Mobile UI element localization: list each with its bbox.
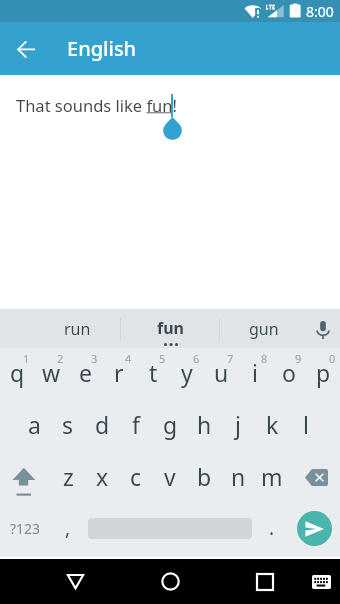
staticText: z <box>63 461 74 492</box>
staticText: ?123 <box>10 519 41 538</box>
staticText: fun <box>157 317 184 339</box>
button[interactable]: k <box>255 400 289 452</box>
button[interactable]: n <box>221 452 255 504</box>
staticText: 3 <box>91 351 98 366</box>
button[interactable]: 8 <box>238 348 272 400</box>
button[interactable]: Recents <box>229 559 300 604</box>
staticText: m <box>261 461 283 492</box>
staticText: q <box>10 357 25 388</box>
staticText: 0 <box>329 351 336 366</box>
staticText: s <box>62 409 74 440</box>
staticText: 7 <box>227 351 234 366</box>
staticText: h <box>197 409 212 440</box>
staticText: e <box>79 357 92 388</box>
button[interactable]: gun <box>217 309 310 348</box>
button[interactable]: 9 <box>272 348 306 400</box>
staticText: x <box>96 461 109 492</box>
button[interactable]: ?123 <box>0 504 51 557</box>
button[interactable]: g <box>153 400 187 452</box>
button[interactable]: 2 <box>34 348 68 400</box>
staticText: d <box>95 409 110 440</box>
button[interactable]: Backspace <box>289 452 340 504</box>
button[interactable]: , <box>51 504 85 557</box>
staticText: English <box>67 35 137 62</box>
staticText: c <box>130 461 142 492</box>
staticText: 5 <box>159 351 166 366</box>
button[interactable]: 3 <box>68 348 102 400</box>
staticText: 8 <box>261 351 268 366</box>
button[interactable]: l <box>289 400 323 452</box>
button[interactable]: Back <box>6 29 46 69</box>
staticText: o <box>282 357 296 388</box>
staticText: y <box>181 357 193 388</box>
staticText: i <box>252 357 258 388</box>
button[interactable]: 6 <box>170 348 204 400</box>
staticText: p <box>316 357 331 388</box>
button[interactable]: s <box>51 400 85 452</box>
button[interactable]: b <box>187 452 221 504</box>
button[interactable]: m <box>255 452 289 504</box>
staticText: 1 <box>23 351 30 366</box>
button[interactable]: Shift <box>0 452 51 504</box>
staticText: 6 <box>193 351 200 366</box>
button[interactable]: . <box>255 504 289 557</box>
button[interactable]: Voice input <box>306 309 340 348</box>
staticText: v <box>164 461 176 492</box>
button[interactable]: Back <box>40 559 110 604</box>
button[interactable]: f <box>119 400 153 452</box>
staticText: n <box>231 461 246 492</box>
button[interactable]: 4 <box>102 348 136 400</box>
staticText: r <box>114 357 124 388</box>
button[interactable]: run <box>31 309 124 348</box>
button[interactable]: Home <box>135 559 206 604</box>
button[interactable]: Send <box>289 504 340 557</box>
button[interactable]: fun <box>124 309 217 348</box>
button[interactable] <box>85 504 255 557</box>
button[interactable]: v <box>153 452 187 504</box>
staticText: gun <box>249 318 279 340</box>
button[interactable]: 0 <box>306 348 340 400</box>
staticText: 2 <box>57 351 64 366</box>
staticText: g <box>163 409 178 440</box>
staticText: a <box>28 409 41 440</box>
staticText: u <box>214 357 229 388</box>
staticText: f <box>132 409 140 440</box>
button[interactable]: z <box>51 452 85 504</box>
button[interactable]: j <box>221 400 255 452</box>
staticText: 9 <box>295 351 302 366</box>
button[interactable]: Switch keyboard <box>300 559 340 604</box>
staticText: b <box>197 461 212 492</box>
button[interactable]: x <box>85 452 119 504</box>
button[interactable]: 5 <box>136 348 170 400</box>
staticText: t <box>149 357 158 388</box>
button[interactable]: 1 <box>0 348 34 400</box>
button[interactable]: a <box>17 400 51 452</box>
button[interactable]: h <box>187 400 221 452</box>
staticText: . <box>269 515 275 541</box>
button[interactable]: c <box>119 452 153 504</box>
button[interactable]: d <box>85 400 119 452</box>
button[interactable]: 7 <box>204 348 238 400</box>
staticText: 4 <box>125 351 132 366</box>
staticText: j <box>235 409 241 440</box>
staticText: k <box>266 409 279 440</box>
staticText: , <box>65 515 71 541</box>
staticText: w <box>42 357 61 388</box>
staticText: That sounds like fun! <box>16 94 177 116</box>
staticText: l <box>303 409 309 440</box>
staticText: run <box>64 318 91 340</box>
staticText: 8:00 <box>306 2 334 21</box>
